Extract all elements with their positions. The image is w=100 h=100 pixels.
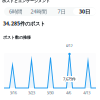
staticText: 34,285件のポスト bbox=[3, 20, 45, 27]
staticText: 24時間 bbox=[30, 8, 46, 15]
staticText: 3/30 bbox=[46, 90, 53, 95]
staticText: 4/13 bbox=[83, 90, 90, 95]
button[interactable]: 6時間 bbox=[4, 8, 27, 15]
staticText: ポスト数の推移 bbox=[3, 35, 31, 40]
staticText: 3/23 bbox=[28, 90, 35, 95]
button[interactable]: 24時間 bbox=[27, 8, 50, 15]
staticText: 7,679件 bbox=[63, 76, 76, 82]
staticText: 3/16 bbox=[10, 90, 17, 95]
staticText: 4/12 bbox=[65, 43, 72, 48]
staticText: 30日 bbox=[79, 8, 90, 15]
button[interactable]: 30日 bbox=[73, 8, 96, 15]
staticText: 6時間 bbox=[9, 8, 22, 15]
button[interactable]: 7日 bbox=[50, 8, 73, 15]
staticText: 7日 bbox=[57, 8, 65, 15]
staticText: ポストとエンゲージメント bbox=[2, 0, 50, 3]
staticText: 4/6 bbox=[66, 90, 71, 95]
